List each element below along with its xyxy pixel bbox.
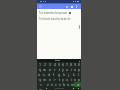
staticText: g [58,73,60,77]
button[interactable]: Search [64,4,69,9]
button[interactable]: 9 [73,62,77,67]
button[interactable]: 2 [42,62,47,67]
button[interactable]: 8 [69,62,73,67]
button[interactable]: r [52,67,57,72]
button[interactable]: y [61,77,65,82]
button[interactable]: e [47,67,52,72]
staticText: 4 [54,63,56,67]
staticText: a [38,73,40,77]
button[interactable]: Enter [74,82,81,87]
button[interactable]: o [73,77,77,82]
staticText: t [59,78,60,82]
staticText: j [68,73,69,77]
button[interactable]: Menu [37,3,43,9]
button[interactable]: e [47,77,52,82]
button[interactable]: g [56,72,61,77]
button[interactable]: i [69,77,73,82]
button[interactable]: j [66,72,71,77]
button[interactable]: Language [75,87,81,90]
staticText: 0 [78,63,80,67]
staticText: 8 [70,63,72,67]
button[interactable]: p [77,77,81,82]
button[interactable]: h [61,72,66,77]
button[interactable]: o [73,67,77,72]
staticText: x [51,83,53,87]
staticText: e [49,78,51,82]
button[interactable]: 3 [47,62,52,67]
staticText: q [39,78,41,82]
button[interactable]: m [70,82,74,87]
button[interactable]: n [66,82,70,87]
button[interactable]: d [46,72,51,77]
button[interactable]: u [65,77,69,82]
button[interactable]: p [77,67,81,72]
staticText: c [55,83,57,87]
staticText: p [78,68,80,72]
button[interactable]: q [37,67,42,72]
staticText: d [48,73,50,77]
button[interactable]: q [37,77,42,82]
staticText: s [43,73,45,77]
button[interactable]: i [69,67,73,72]
button[interactable]: f [51,72,56,77]
button[interactable]: b [62,82,66,87]
staticText: r [54,68,56,72]
button[interactable]: 7 [65,62,69,67]
button[interactable]: 6 [61,62,65,67]
button[interactable]: Add [69,4,74,9]
button[interactable]: v [58,82,62,87]
staticText: y [62,78,64,82]
button[interactable]: Shift [37,82,45,87]
staticText: i [71,78,72,82]
staticText: z [47,83,49,87]
staticText: e [49,68,51,72]
staticText: i [71,68,72,72]
staticText: v [59,83,61,87]
staticText: 3 [49,63,51,67]
button[interactable]: c [54,82,58,87]
staticText: f [53,73,54,77]
button[interactable]: u [65,67,69,72]
button[interactable]: 1 [37,62,42,67]
staticText: w [43,68,46,72]
staticText: k [73,73,75,77]
staticText: m [71,83,74,87]
staticText: Beta [55,59,60,62]
button[interactable]: k [71,72,76,77]
staticText: t [59,68,60,72]
button[interactable]: More options [74,4,79,9]
staticText: 9 [74,63,76,67]
staticText: 7 [66,63,68,67]
staticText: u [66,68,68,72]
button[interactable]: Settings [78,60,80,62]
button[interactable]: z [45,82,50,87]
button[interactable]: Period [71,87,75,90]
staticText: o [74,68,76,72]
button[interactable]: w [42,77,47,82]
staticText: p [78,78,80,82]
button[interactable]: t [57,77,61,82]
staticText: l [78,73,79,77]
button[interactable]: Emoji [44,87,48,90]
button[interactable]: y [61,67,65,72]
staticText: n [67,83,69,87]
staticText: Te bluets baut beta ak ds [39,17,71,21]
button[interactable]: Space [48,87,71,90]
button[interactable]: x [50,82,54,87]
staticText: 1 [39,63,41,67]
button[interactable]: s [41,72,46,77]
staticText: 6 [62,63,64,67]
button[interactable]: 0 [77,62,81,67]
staticText: o [74,78,76,82]
button[interactable]: t [57,67,61,72]
button[interactable]: r [52,77,57,82]
button[interactable]: 4 [52,62,57,67]
button[interactable]: l [76,72,81,77]
button[interactable]: Symbols [37,87,44,90]
button[interactable]: w [42,67,47,72]
staticText: q [39,68,41,72]
button[interactable]: a [37,72,41,77]
staticText: h [63,73,65,77]
button[interactable]: 5 [57,62,61,67]
staticText: 5 [58,63,60,67]
